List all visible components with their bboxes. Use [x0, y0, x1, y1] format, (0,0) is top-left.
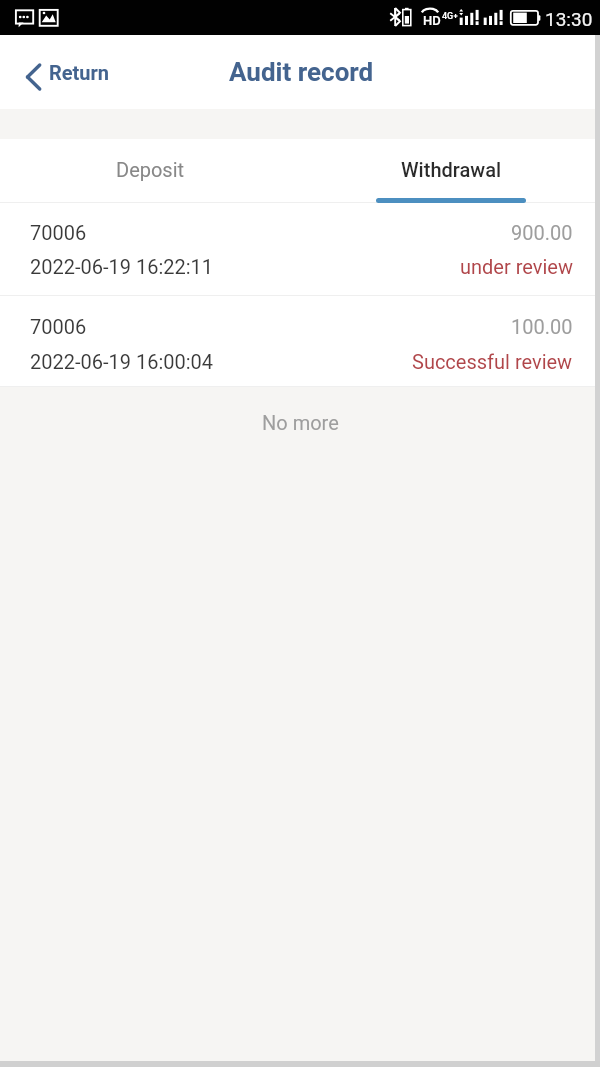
staticText: under review	[460, 255, 573, 278]
staticText: 2022-06-19 16:22:11	[30, 255, 214, 278]
button[interactable]: Return	[14, 41, 126, 103]
staticText: Withdrawal	[401, 158, 502, 181]
staticText: Audit record	[229, 57, 374, 87]
staticText: No more	[262, 411, 339, 434]
staticText: HD	[423, 13, 441, 28]
button[interactable]: 70006	[0, 296, 600, 386]
staticText: Deposit	[116, 158, 185, 181]
staticText: 13:30	[545, 8, 593, 30]
staticText: Return	[49, 61, 110, 84]
button[interactable]: Deposit	[0, 139, 300, 201]
button[interactable]: 70006	[0, 203, 600, 295]
button[interactable]: Withdrawal	[300, 139, 600, 201]
staticText: 4G	[442, 11, 454, 22]
staticText: 100.00	[511, 315, 573, 338]
staticText: 70006	[30, 221, 87, 244]
staticText: Successful review	[412, 350, 573, 373]
staticText: 2022-06-19 16:00:04	[30, 350, 214, 373]
staticText: 70006	[30, 315, 87, 338]
staticText: 900.00	[511, 221, 573, 244]
